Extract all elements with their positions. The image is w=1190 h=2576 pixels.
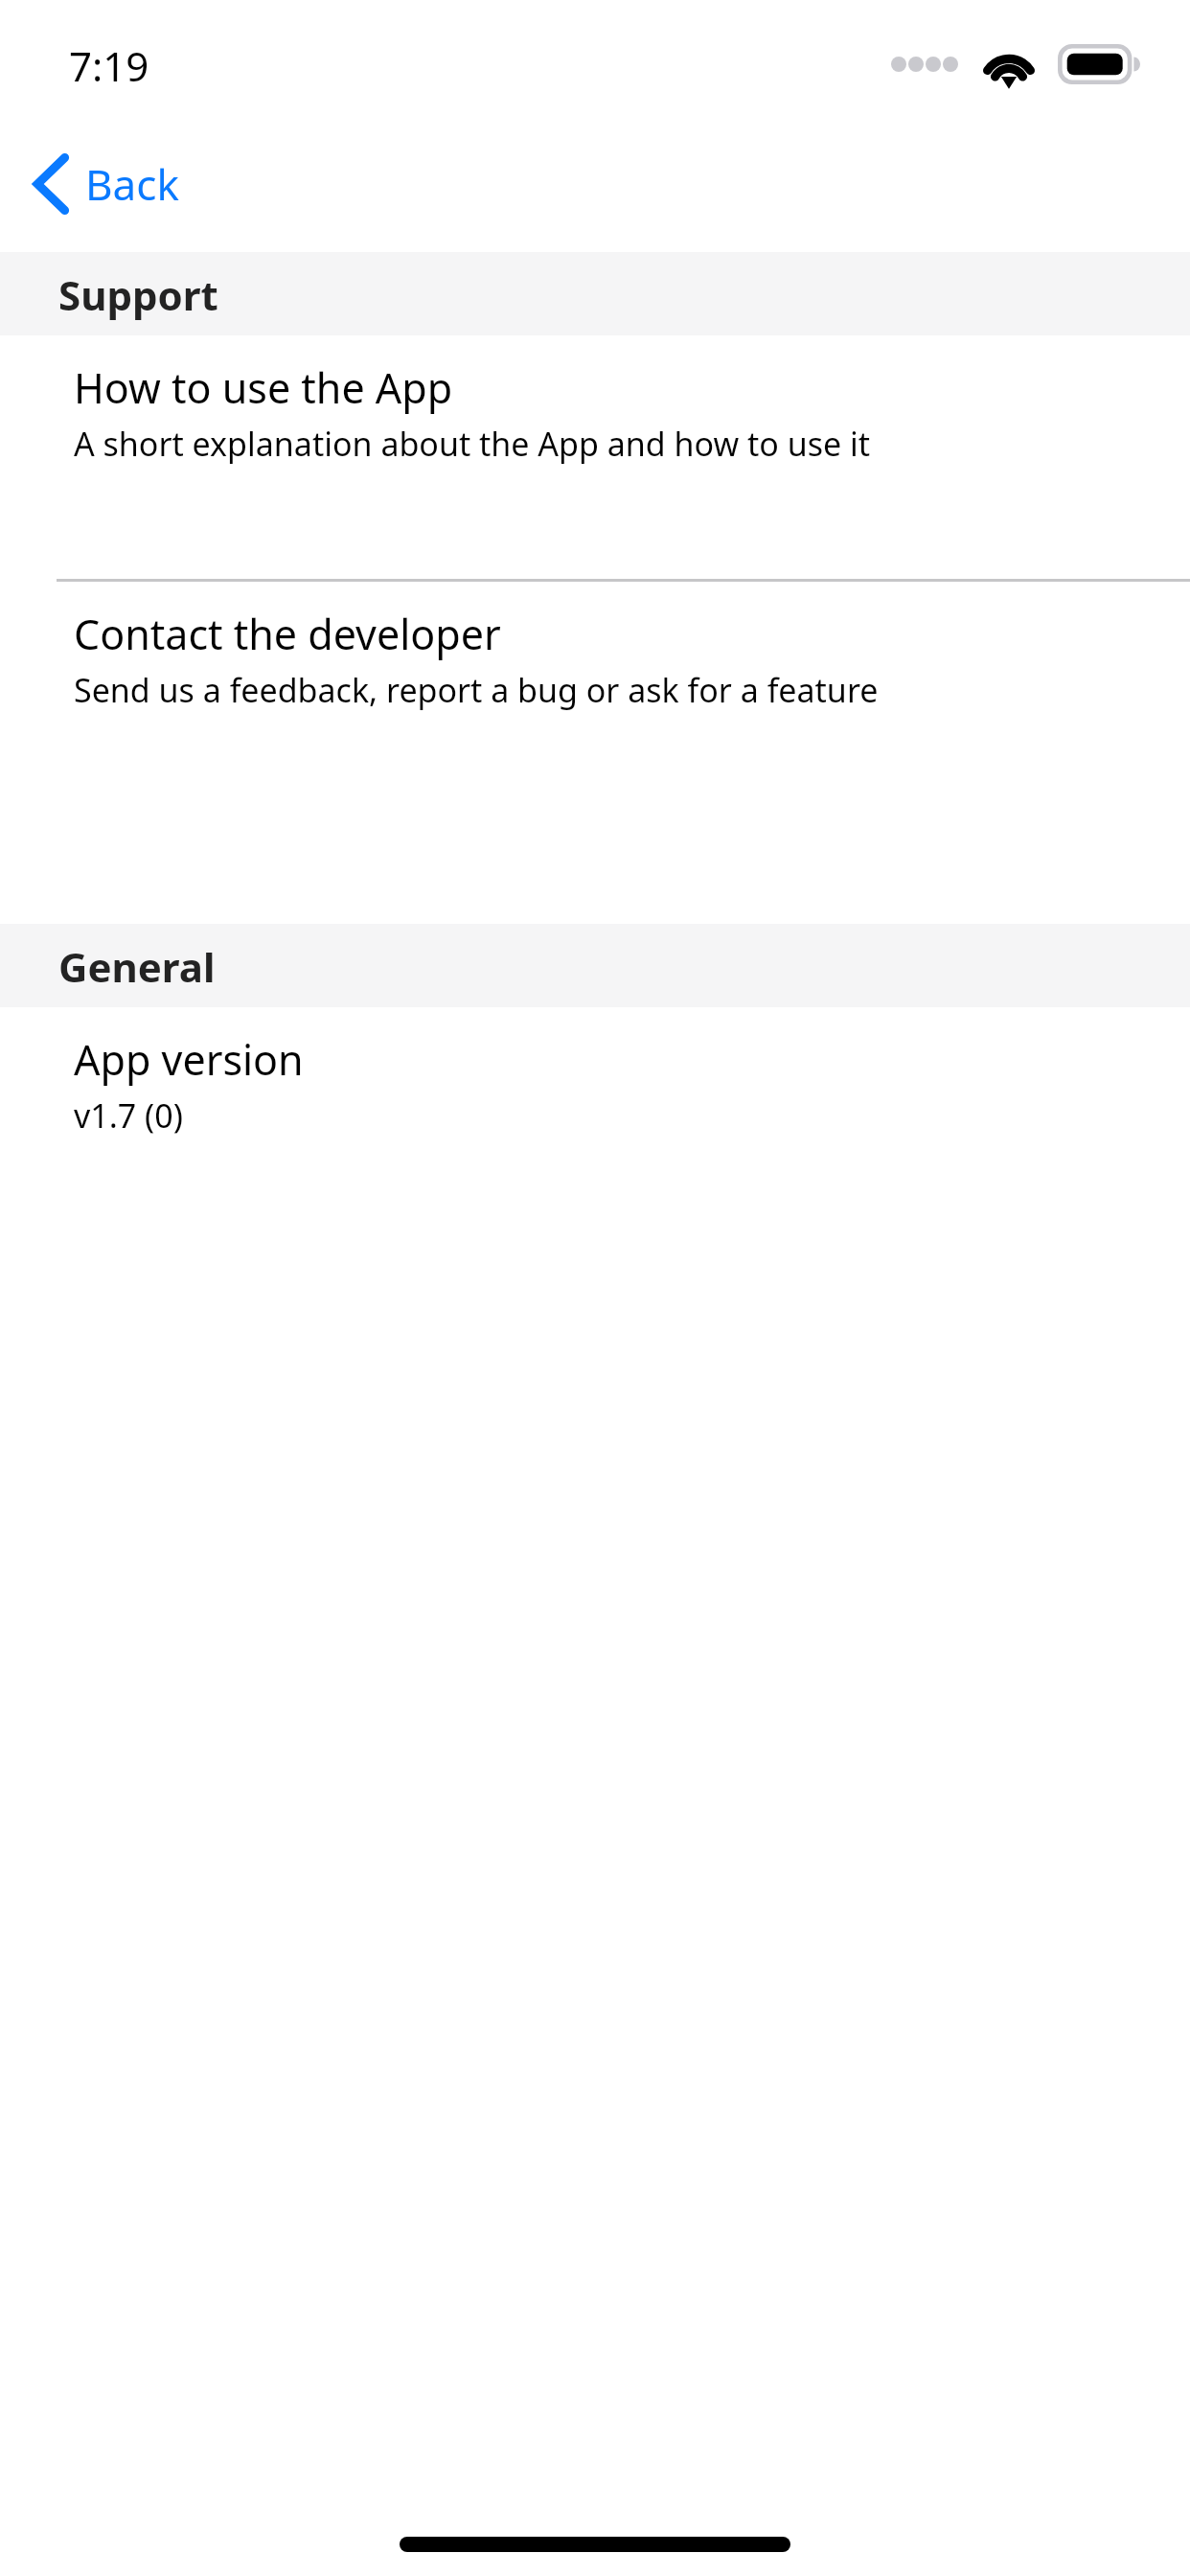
staticText: v1.7 (0) — [74, 1093, 183, 1138]
staticText: Back — [85, 155, 179, 213]
button[interactable]: Contact the developer — [0, 582, 1190, 828]
other: Wi-Fi — [981, 44, 1037, 84]
staticText: Support — [58, 267, 218, 322]
staticText: App version — [74, 1031, 304, 1088]
staticText: General — [58, 939, 216, 994]
other: Cellular signal — [891, 57, 958, 72]
staticText: Contact the developer — [74, 606, 501, 662]
other: Battery — [1058, 44, 1140, 84]
button[interactable]: How to use the App — [0, 335, 1190, 579]
staticText: A short explanation about the App and ho… — [74, 422, 871, 466]
staticText: Send us a feedback, report a bug or ask … — [74, 668, 879, 712]
button[interactable]: Back — [0, 143, 204, 225]
staticText: How to use the App — [74, 359, 453, 416]
staticText: 7:19 — [69, 38, 149, 93]
